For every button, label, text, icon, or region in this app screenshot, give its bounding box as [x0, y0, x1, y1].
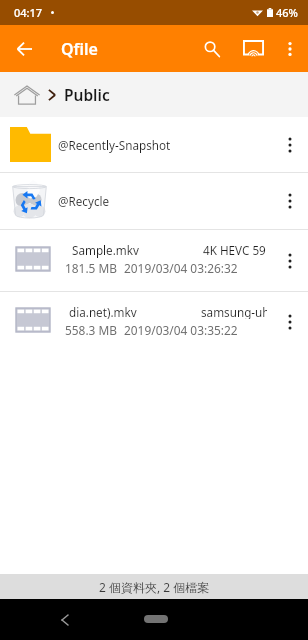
button[interactable]: More options: [272, 230, 308, 291]
button[interactable]: @Recently-Snapshot: [0, 117, 308, 172]
button[interactable]: Search: [197, 34, 226, 63]
staticText: 181.5 MB: [65, 260, 117, 276]
button[interactable]: Sample.mkv: [0, 230, 308, 291]
staticText: 2 個資料夾, 2 個檔案: [99, 579, 210, 595]
button[interactable]: Cast: [238, 33, 269, 64]
button[interactable]: More options: [272, 117, 308, 172]
staticText: 2019/03/04 03:26:32: [124, 260, 238, 276]
button[interactable]: Home: [144, 615, 168, 623]
button[interactable]: More options: [272, 173, 308, 229]
button[interactable]: More options: [276, 35, 303, 62]
staticText: Sample.mkv: [72, 242, 139, 258]
button[interactable]: Back: [10, 34, 39, 63]
staticText: @Recently-Snapshot: [58, 137, 171, 153]
staticText: 558.3 MB: [65, 322, 117, 338]
staticText: 04:17: [14, 5, 43, 20]
staticText: samsung-uh: [201, 304, 267, 319]
staticText: 2019/03/04 03:35:22: [124, 322, 238, 338]
button[interactable]: @Recycle: [0, 173, 308, 229]
staticText: 46%: [276, 5, 298, 20]
button[interactable]: More options: [272, 292, 308, 352]
staticText: Public: [64, 84, 110, 105]
button[interactable]: Home: [10, 80, 44, 110]
staticText: 4K HEVC 59: [203, 242, 266, 257]
staticText: dia.net).mkv: [69, 304, 137, 320]
button[interactable]: dia.net).mkv: [0, 292, 308, 352]
staticText: Qfile: [61, 38, 98, 60]
button[interactable]: Back: [53, 608, 77, 632]
staticText: @Recycle: [58, 193, 110, 209]
